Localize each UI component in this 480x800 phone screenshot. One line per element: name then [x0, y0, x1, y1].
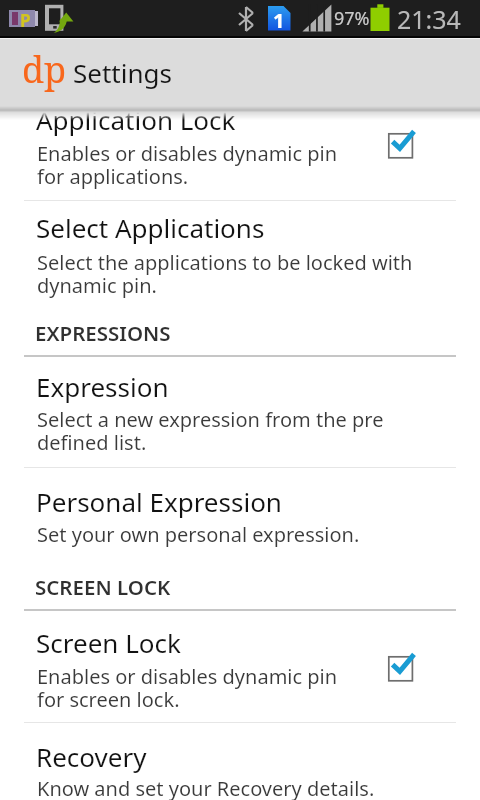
staticText: 1 [273, 7, 285, 34]
staticText: 21:34 [397, 2, 461, 36]
button[interactable] [0, 107, 480, 200]
staticText: Application Lock [36, 102, 236, 137]
staticText: P [20, 9, 31, 32]
staticText: Set your own personal expression. [37, 521, 360, 548]
staticText: Recovery [36, 739, 147, 774]
staticText: Select a new expression from the pre def… [37, 406, 384, 456]
button[interactable] [0, 723, 480, 800]
button[interactable]: dp [0, 37, 480, 106]
staticText: Settings [73, 55, 172, 90]
staticText: 97% [334, 6, 370, 31]
button[interactable] [0, 357, 480, 466]
staticText: Expression [36, 369, 169, 404]
staticText: Select the applications to be locked wit… [37, 249, 413, 299]
staticText: Select Applications [36, 210, 265, 245]
button[interactable]: Toggle setting [378, 646, 426, 694]
staticText: Enables or disables dynamic pin for appl… [37, 140, 338, 190]
staticText: dp [22, 45, 67, 94]
staticText: Know and set your Recovery details. [37, 775, 375, 800]
button[interactable] [0, 468, 480, 548]
staticText: EXPRESSIONS [35, 319, 171, 347]
staticText: Personal Expression [36, 484, 282, 519]
staticText: SCREEN LOCK [35, 573, 171, 601]
button[interactable]: Toggle setting [378, 123, 426, 171]
staticText: Enables or disables dynamic pin for scre… [37, 663, 338, 713]
staticText: Screen Lock [36, 625, 181, 660]
button[interactable] [0, 611, 480, 721]
button[interactable] [0, 201, 480, 299]
